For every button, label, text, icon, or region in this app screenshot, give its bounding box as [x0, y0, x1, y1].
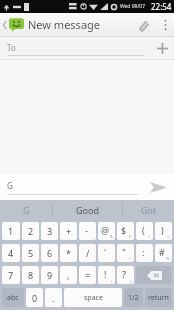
button[interactable]: $ — [117, 222, 134, 240]
staticText: : — [142, 246, 145, 258]
staticText: ? — [122, 268, 126, 280]
staticText: € — [129, 234, 132, 239]
staticText: 2 — [28, 225, 34, 237]
staticText: Good — [76, 204, 99, 216]
button[interactable]: G — [0, 200, 52, 219]
button[interactable]: - — [79, 222, 96, 240]
button[interactable]: Good — [53, 200, 122, 219]
staticText: ( — [142, 224, 145, 236]
button[interactable]: 2 — [22, 222, 39, 240]
staticText: G — [7, 180, 13, 191]
button[interactable]: + — [60, 222, 77, 240]
staticText: - — [85, 224, 88, 236]
staticText: % — [166, 256, 170, 261]
staticText: " — [122, 246, 126, 258]
button[interactable]: 1/2 — [124, 288, 143, 307]
staticText: 1/2 — [128, 293, 139, 303]
staticText: 3 — [47, 225, 53, 237]
staticText: 6 — [47, 247, 53, 259]
button[interactable]: / — [79, 244, 96, 262]
button[interactable]: @ — [98, 222, 115, 240]
button[interactable]: G — [7, 180, 138, 195]
staticText: Wed 09/07 — [120, 3, 146, 10]
staticText: < — [148, 234, 151, 239]
button[interactable]: Up — [0, 13, 28, 36]
staticText: 7 — [8, 269, 14, 281]
staticText: $ — [121, 224, 127, 236]
staticText: & — [110, 234, 113, 239]
staticText: return — [148, 293, 169, 303]
button[interactable]: return — [145, 288, 172, 307]
button[interactable]: 3 — [41, 222, 58, 240]
staticText: 4 — [8, 247, 14, 259]
button[interactable]: To — [7, 42, 144, 56]
button[interactable]: Backspace — [136, 266, 172, 284]
staticText: ~ — [129, 256, 132, 261]
staticText: Got — [141, 204, 157, 216]
staticText: # — [159, 246, 165, 258]
staticText: 1 — [8, 225, 14, 237]
button[interactable]: , — [60, 266, 77, 284]
button[interactable]: space — [64, 288, 122, 307]
staticText: ¿ — [130, 278, 132, 283]
button[interactable]: 8 — [22, 266, 39, 284]
staticText: ¡ — [111, 278, 113, 283]
staticText: 8 — [28, 269, 34, 281]
button[interactable]: : — [136, 244, 153, 262]
staticText: 22:54 — [151, 1, 172, 12]
button[interactable]: 0 — [26, 288, 43, 307]
button[interactable]: Got — [123, 200, 174, 219]
button[interactable]: abc — [2, 288, 24, 307]
staticText: , — [67, 269, 70, 281]
button[interactable]: # — [155, 244, 172, 262]
staticText: 9 — [47, 269, 53, 281]
button[interactable]: 4 — [2, 244, 20, 262]
button[interactable]: " — [117, 244, 134, 262]
staticText: . — [52, 292, 55, 304]
staticText: ! — [104, 268, 107, 280]
staticText: space — [84, 293, 103, 303]
staticText: * — [66, 247, 71, 259]
staticText: > — [167, 234, 170, 239]
button[interactable]: ' — [98, 244, 115, 262]
button[interactable]: 9 — [41, 266, 58, 284]
staticText: To — [7, 42, 16, 53]
staticText: + — [66, 225, 72, 237]
button[interactable]: . — [45, 288, 62, 307]
button[interactable]: * — [60, 244, 77, 262]
button[interactable]: = — [79, 266, 96, 284]
button[interactable]: ? — [117, 266, 134, 284]
button[interactable]: ! — [98, 266, 115, 284]
button[interactable]: 6 — [41, 244, 58, 262]
button[interactable]: Add recipient — [150, 37, 174, 60]
button[interactable]: Send — [142, 174, 174, 200]
staticText: ) — [161, 224, 164, 236]
button[interactable]: ) — [155, 222, 172, 240]
staticText: @ — [101, 224, 110, 236]
button[interactable]: 1 — [2, 222, 20, 240]
staticText: ; — [149, 256, 151, 261]
staticText: ` — [111, 256, 113, 261]
button[interactable]: ( — [136, 222, 153, 240]
button[interactable]: Attach — [130, 13, 156, 36]
staticText: / — [86, 247, 90, 259]
staticText: 5 — [28, 247, 34, 259]
button[interactable]: 7 — [2, 266, 20, 284]
staticText: abc — [7, 293, 19, 303]
staticText: = — [85, 269, 91, 281]
button[interactable]: More options — [156, 13, 174, 36]
staticText: ' — [104, 246, 107, 258]
staticText: G — [23, 204, 30, 216]
button[interactable]: 5 — [22, 244, 39, 262]
staticText: _ — [92, 234, 94, 239]
staticText: 0 — [32, 292, 38, 304]
staticText: New message — [28, 17, 130, 32]
